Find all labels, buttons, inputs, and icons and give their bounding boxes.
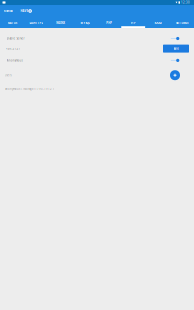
- button[interactable]: Edit: [163, 45, 189, 53]
- staticText: Enable Server: [7, 37, 25, 40]
- staticText: PHP: [106, 21, 112, 25]
- staticText: HAVE: [20, 9, 27, 13]
- button[interactable]: Add user: [170, 70, 180, 80]
- staticText: TOOLS: [154, 21, 161, 25]
- staticText: anonymous ( /storage/1790-1912 ): [5, 87, 54, 91]
- staticText: FTP: [131, 21, 136, 25]
- button[interactable]: Anonymous: [170, 58, 179, 62]
- staticText: Anonymous: [7, 59, 23, 62]
- staticText: 12:30: [181, 1, 190, 4]
- staticText: KSWEB: [4, 9, 13, 13]
- staticText: SETTINGS: [176, 21, 188, 25]
- button[interactable]: SETTINGS: [170, 17, 194, 28]
- button[interactable]: FTP: [121, 17, 145, 28]
- button[interactable]: LIGHTTPD: [24, 17, 48, 28]
- staticText: STATUS: [8, 21, 17, 25]
- button[interactable]: Enable Server: [170, 36, 179, 40]
- button[interactable]: PHP: [97, 17, 121, 28]
- staticText: Users: [4, 73, 11, 77]
- button[interactable]: NGINX: [48, 17, 73, 28]
- button[interactable]: TOOLS: [145, 17, 170, 28]
- staticText: Port 2121: [6, 47, 21, 50]
- button[interactable]: STATUS: [0, 17, 24, 28]
- staticText: LIGHTTPD: [29, 21, 43, 25]
- staticText: NGINX: [56, 21, 65, 25]
- button[interactable]: MYSQL: [73, 17, 97, 28]
- staticText: Edit: [173, 47, 178, 50]
- staticText: MYSQL: [80, 21, 89, 25]
